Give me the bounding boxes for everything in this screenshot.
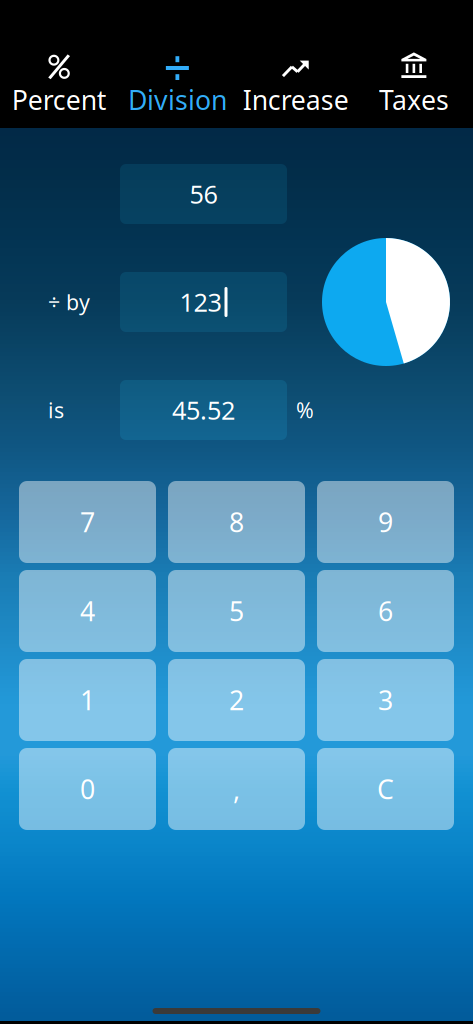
staticText: ÷ by bbox=[48, 288, 90, 316]
staticText: Taxes bbox=[379, 82, 449, 117]
button[interactable]: 0 bbox=[19, 748, 156, 830]
button[interactable]: 56 bbox=[120, 164, 287, 224]
button[interactable]: C bbox=[317, 748, 454, 830]
button[interactable]: 7 bbox=[19, 481, 156, 563]
staticText: 7 bbox=[80, 504, 95, 540]
staticText: 4 bbox=[80, 593, 95, 629]
staticText: 45.52 bbox=[172, 393, 235, 427]
button[interactable]: 45.52 bbox=[120, 380, 287, 440]
button[interactable]: Division bbox=[118, 0, 236, 128]
button[interactable]: Increase bbox=[236, 0, 355, 128]
button[interactable]: 2 bbox=[168, 659, 305, 741]
button[interactable]: 9 bbox=[317, 481, 454, 563]
button[interactable]: 6 bbox=[317, 570, 454, 652]
staticText: 0 bbox=[80, 771, 95, 807]
button[interactable]: Taxes bbox=[355, 0, 473, 128]
button[interactable]: 5 bbox=[168, 570, 305, 652]
staticText: 3 bbox=[378, 682, 393, 718]
staticText: is bbox=[48, 396, 64, 424]
button[interactable]: 1 bbox=[19, 659, 156, 741]
button[interactable]: 4 bbox=[19, 570, 156, 652]
staticText: C bbox=[377, 771, 394, 807]
button[interactable]: 123 bbox=[120, 272, 287, 332]
staticText: Percent bbox=[12, 82, 107, 117]
staticText: % bbox=[296, 396, 314, 424]
staticText: Division bbox=[128, 82, 227, 117]
staticText: 8 bbox=[229, 504, 244, 540]
staticText: 123 bbox=[179, 285, 221, 319]
staticText: 56 bbox=[189, 177, 217, 211]
button[interactable]: , bbox=[168, 748, 305, 830]
staticText: 9 bbox=[378, 504, 393, 540]
staticText: 6 bbox=[378, 593, 393, 629]
staticText: Increase bbox=[243, 82, 349, 117]
button[interactable]: 8 bbox=[168, 481, 305, 563]
staticText: 2 bbox=[229, 682, 244, 718]
button[interactable]: Percent bbox=[0, 0, 118, 128]
staticText: , bbox=[233, 771, 240, 807]
button[interactable]: 3 bbox=[317, 659, 454, 741]
staticText: 5 bbox=[229, 593, 244, 629]
staticText: 1 bbox=[80, 682, 95, 718]
